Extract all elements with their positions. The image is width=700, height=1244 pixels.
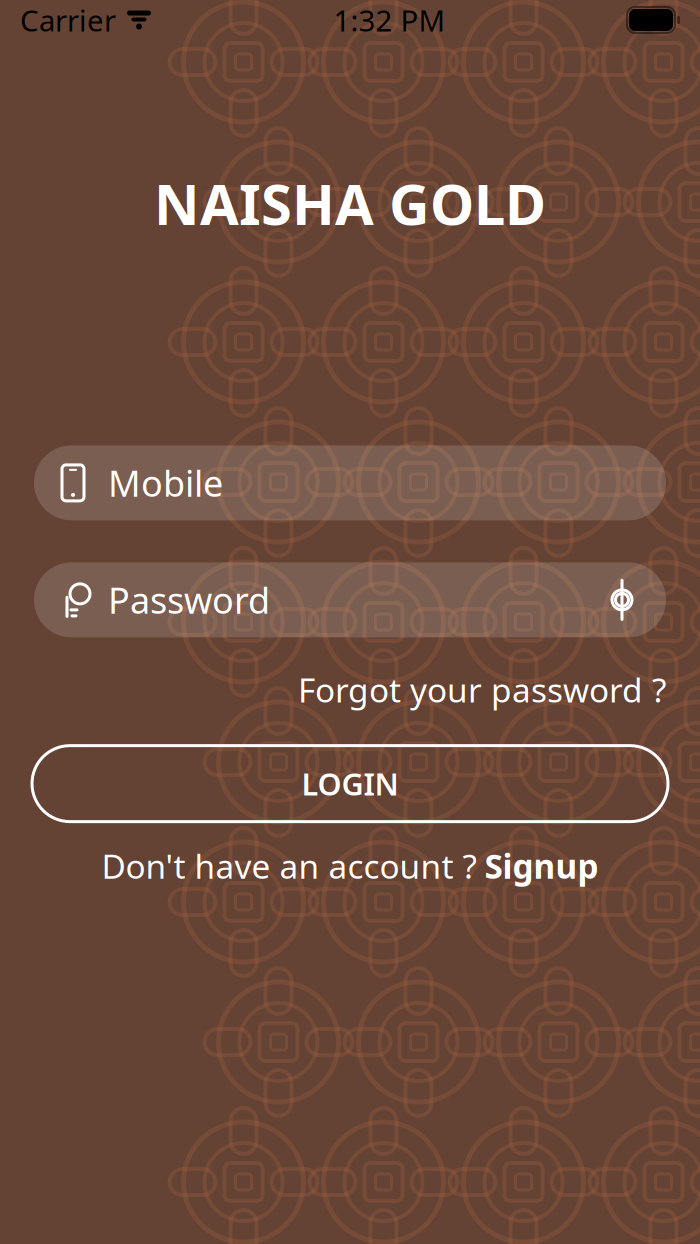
- button[interactable]: LOGIN: [32, 746, 668, 822]
- staticText: Mobile: [108, 459, 223, 507]
- staticText: 1:32 PM: [333, 0, 445, 39]
- staticText: Don't have an account ?: [101, 844, 476, 888]
- button[interactable]: Don't have an account ?: [101, 838, 598, 894]
- staticText: Password: [108, 576, 270, 624]
- staticText: Signup: [484, 844, 598, 888]
- staticText: LOGIN: [301, 763, 398, 804]
- button[interactable]: Forgot your password ?: [298, 659, 666, 720]
- staticText: Forgot your password ?: [298, 667, 666, 712]
- staticText: Carrier: [20, 0, 116, 39]
- button[interactable]: Password: [34, 562, 666, 637]
- button[interactable]: Mobile: [34, 445, 666, 520]
- staticText: NAISHA GOLD: [154, 166, 546, 240]
